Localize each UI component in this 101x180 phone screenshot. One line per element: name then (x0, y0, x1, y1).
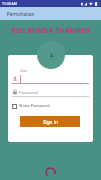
other: Profile (37, 41, 65, 69)
staticText: User (20, 68, 28, 73)
staticText: Show Password (19, 103, 50, 109)
staticText: 11:38 AM (2, 1, 17, 6)
staticText: Permohonan (7, 11, 35, 17)
staticText: RSU BUNDA THAMRIN (11, 25, 90, 35)
staticText: Password (19, 90, 38, 96)
button[interactable]: Sign in (20, 116, 80, 127)
button[interactable]: Show Password (12, 103, 50, 109)
staticText: Sign in (43, 119, 58, 125)
